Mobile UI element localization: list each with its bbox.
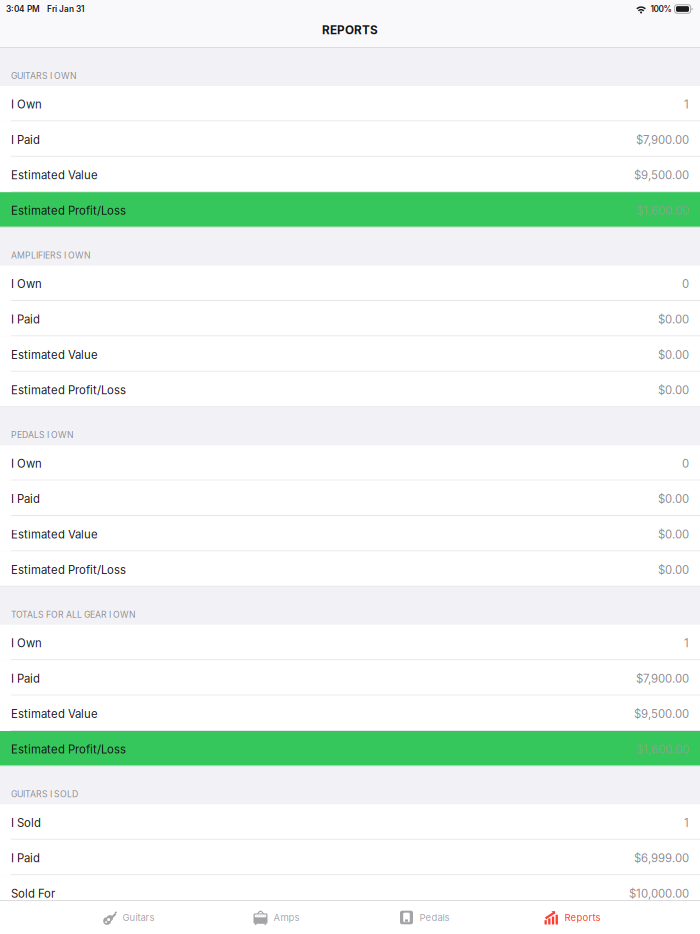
button[interactable]: Estimated Profit/Loss xyxy=(0,372,700,407)
button[interactable]: I Paid xyxy=(0,121,700,157)
button[interactable]: Guitars xyxy=(54,901,202,934)
button[interactable]: I Sold xyxy=(0,804,700,840)
staticText: Fri Jan 31 xyxy=(47,4,84,14)
button[interactable]: Reports xyxy=(498,901,646,934)
staticText: 100% xyxy=(651,4,672,14)
staticText: $7,900.00 xyxy=(636,672,689,685)
staticText: AMPLIFIERS I OWN xyxy=(11,250,91,261)
button[interactable]: Estimated Value xyxy=(0,516,700,551)
staticText: $10,000.00 xyxy=(629,887,689,900)
staticText: Estimated Value xyxy=(11,527,98,541)
staticText: PEDALS I OWN xyxy=(11,430,74,440)
button[interactable]: I Own xyxy=(0,625,700,660)
staticText: Estimated Value xyxy=(11,707,98,721)
staticText: Estimated Profit/Loss xyxy=(11,383,126,397)
staticText: 0 xyxy=(682,457,689,470)
button[interactable]: Pedals xyxy=(350,901,498,934)
staticText: $0.00 xyxy=(658,492,689,506)
staticText: $0.00 xyxy=(658,527,689,541)
button[interactable]: I Own xyxy=(0,266,700,301)
staticText: Guitars xyxy=(122,912,154,923)
staticText: $1,600.00 xyxy=(636,204,689,217)
staticText: 1 xyxy=(684,97,689,111)
staticText: I Own xyxy=(11,457,42,470)
staticText: Estimated Profit/Loss xyxy=(11,742,126,756)
button[interactable]: I Paid xyxy=(0,840,700,875)
staticText: Estimated Value xyxy=(11,348,98,362)
staticText: GUITARS I SOLD xyxy=(11,789,78,799)
button[interactable]: Profit/Loss xyxy=(0,911,700,934)
staticText: I Paid xyxy=(11,133,40,147)
staticText: $0.00 xyxy=(658,563,689,577)
button[interactable]: Estimated Profit/Loss xyxy=(0,551,700,587)
button[interactable]: I Own xyxy=(0,86,700,121)
staticText: $9,500.00 xyxy=(634,168,689,182)
staticText: $1,600.00 xyxy=(636,742,689,756)
staticText: 1 xyxy=(684,636,689,650)
staticText: Estimated Value xyxy=(11,168,98,182)
staticText: Estimated Profit/Loss xyxy=(11,563,126,577)
staticText: Sold For xyxy=(11,887,55,900)
staticText: I Paid xyxy=(11,851,40,865)
staticText: GUITARS I OWN xyxy=(11,70,77,81)
staticText: $0.00 xyxy=(658,383,689,397)
button[interactable]: I Paid xyxy=(0,481,700,516)
staticText: $9,500.00 xyxy=(634,707,689,721)
staticText: Estimated Profit/Loss xyxy=(11,204,126,217)
staticText: Pedals xyxy=(419,912,449,923)
staticText: I Sold xyxy=(11,816,41,830)
staticText: I Paid xyxy=(11,672,40,685)
staticText: $6,999.00 xyxy=(634,851,689,865)
button[interactable]: Sold For xyxy=(0,875,700,911)
staticText: 0 xyxy=(682,277,689,291)
staticText: I Own xyxy=(11,97,42,111)
staticText: 3:04 PM xyxy=(6,4,40,14)
button[interactable]: Estimated Profit/Loss xyxy=(0,731,700,766)
staticText: $7,900.00 xyxy=(636,133,689,147)
button[interactable]: Estimated Value xyxy=(0,157,700,192)
button[interactable]: Estimated Value xyxy=(0,336,700,372)
staticText: $0.00 xyxy=(658,312,689,326)
staticText: I Paid xyxy=(11,492,40,506)
staticText: $0.00 xyxy=(658,348,689,362)
staticText: Reports xyxy=(564,912,600,923)
staticText: I Own xyxy=(11,277,42,291)
button[interactable]: I Own xyxy=(0,445,700,481)
staticText: I Own xyxy=(11,636,42,650)
button[interactable]: Amps xyxy=(202,901,350,934)
button[interactable]: I Paid xyxy=(0,301,700,336)
button[interactable]: Estimated Profit/Loss xyxy=(0,192,700,228)
staticText: TOTALS FOR ALL GEAR I OWN xyxy=(11,609,136,620)
staticText: I Paid xyxy=(11,312,40,326)
staticText: 1 xyxy=(684,816,689,830)
button[interactable]: Estimated Value xyxy=(0,696,700,731)
button[interactable]: I Paid xyxy=(0,660,700,696)
staticText: Amps xyxy=(273,912,299,923)
staticText: REPORTS xyxy=(322,23,378,37)
